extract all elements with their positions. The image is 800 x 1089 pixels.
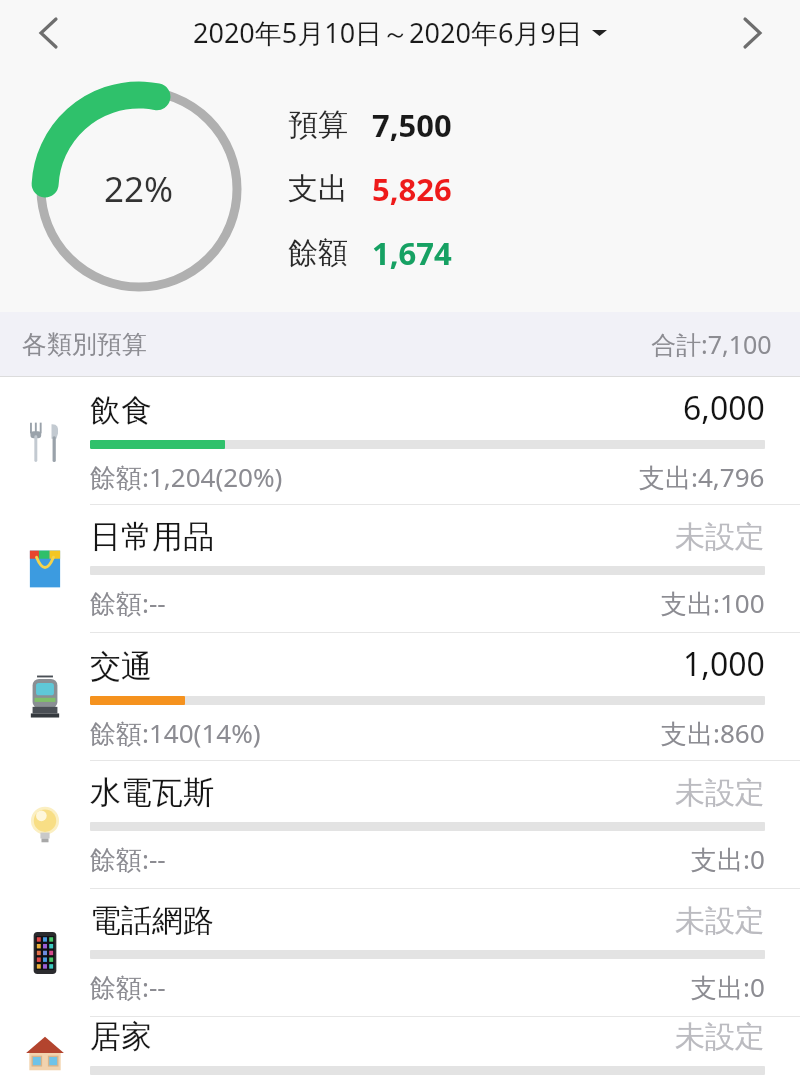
staticText: 支出:100 — [661, 585, 765, 621]
button[interactable]: 日常用品 — [0, 505, 800, 632]
button[interactable]: 電話網路 — [0, 889, 800, 1016]
staticText: 1,674 — [372, 232, 452, 274]
button[interactable]: 飲食 — [0, 377, 800, 504]
staticText: 6,000 — [683, 386, 765, 430]
staticText: 支出:4,796 — [639, 459, 765, 495]
staticText: 7,500 — [372, 104, 452, 146]
staticText: 未設定 — [675, 774, 765, 812]
staticText: 1,000 — [683, 642, 765, 686]
staticText: 2020年5月10日～2020年6月9日 — [193, 14, 583, 51]
staticText: 支出:0 — [691, 969, 765, 1005]
staticText: 交通 — [90, 647, 152, 686]
button[interactable]: 2020年5月10日～2020年6月9日 — [193, 14, 607, 51]
staticText: 飲食 — [90, 391, 152, 430]
button[interactable]: 水電瓦斯 — [0, 761, 800, 888]
button[interactable]: Previous period — [0, 0, 95, 65]
staticText: 水電瓦斯 — [90, 773, 214, 812]
staticText: 支出:0 — [691, 841, 765, 877]
staticText: 未設定 — [675, 1018, 765, 1056]
staticText: 合計:7,100 — [651, 327, 772, 361]
staticText: 未設定 — [675, 518, 765, 556]
staticText: 餘額:-- — [90, 585, 166, 621]
staticText: 5,826 — [372, 168, 452, 210]
staticText: 電話網路 — [90, 901, 214, 940]
staticText: 預算 — [288, 106, 348, 144]
staticText: 居家 — [90, 1017, 152, 1056]
staticText: 餘額:-- — [90, 841, 166, 877]
button[interactable]: Next period — [705, 0, 800, 65]
staticText: 餘額:1,204(20%) — [90, 459, 283, 495]
staticText: 支出 — [288, 170, 348, 208]
staticText: 餘額:-- — [90, 969, 166, 1005]
staticText: 22% — [104, 165, 174, 213]
staticText: 未設定 — [675, 902, 765, 940]
staticText: 各類別預算 — [22, 329, 147, 360]
staticText: 支出:860 — [661, 715, 765, 751]
staticText: 餘額:140(14%) — [90, 715, 261, 751]
staticText: 日常用品 — [90, 517, 214, 556]
button[interactable]: 居家 — [0, 1017, 800, 1089]
button[interactable]: 交通 — [0, 633, 800, 760]
staticText: 餘額 — [288, 234, 348, 272]
